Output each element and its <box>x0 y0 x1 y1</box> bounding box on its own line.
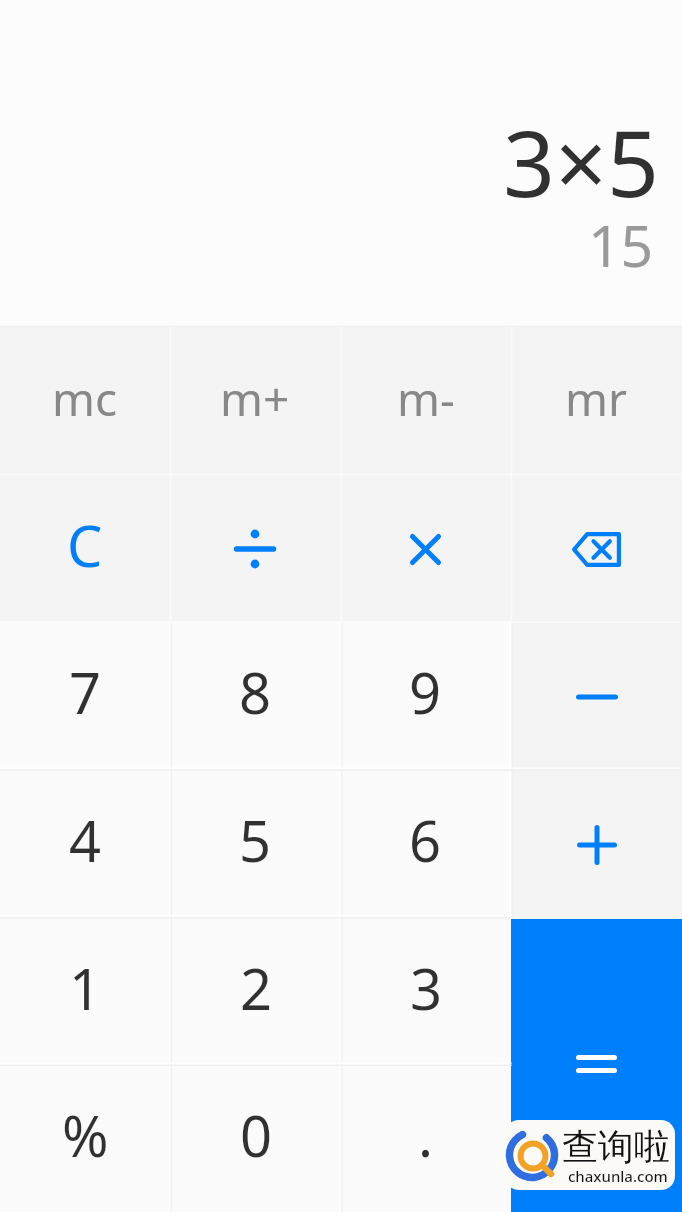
button[interactable]: 6 <box>340 771 511 919</box>
button[interactable]: C <box>0 475 170 623</box>
button[interactable]: 7 <box>0 623 170 771</box>
button[interactable]: 9 <box>340 623 511 771</box>
staticText: 0 <box>240 1097 273 1173</box>
staticText: m+ <box>220 367 290 430</box>
button[interactable]: Equals <box>511 919 682 1212</box>
button[interactable]: 2 <box>171 919 341 1067</box>
staticText: 7 <box>69 654 102 730</box>
button[interactable]: Plus <box>511 771 682 919</box>
button[interactable]: % <box>0 1067 171 1212</box>
button[interactable]: 5 <box>170 771 340 919</box>
staticText: 6 <box>409 802 442 878</box>
button[interactable]: mr <box>511 327 682 475</box>
staticText: 8 <box>239 654 272 730</box>
button[interactable]: mc <box>0 327 170 475</box>
button[interactable]: 4 <box>0 771 170 919</box>
staticText: 2 <box>240 950 273 1026</box>
button[interactable]: Divide <box>170 475 340 623</box>
button[interactable]: 1 <box>0 919 171 1067</box>
button[interactable]: 8 <box>170 623 340 771</box>
staticText: 3×5 <box>503 100 660 224</box>
staticText: 9 <box>409 654 442 730</box>
staticText: m- <box>397 367 455 430</box>
button[interactable]: 3 <box>341 919 511 1067</box>
staticText: % <box>62 1097 109 1173</box>
button[interactable]: m- <box>340 327 511 475</box>
staticText: 5 <box>239 802 272 878</box>
staticText: 3 <box>410 950 443 1026</box>
button[interactable]: Minus <box>511 623 682 771</box>
staticText: C <box>67 507 103 583</box>
button[interactable]: Multiply <box>340 475 511 623</box>
staticText: 4 <box>69 802 102 878</box>
staticText: chaxunla.com <box>568 1166 668 1186</box>
staticText: 1 <box>69 950 102 1026</box>
button[interactable]: . <box>341 1067 511 1212</box>
button[interactable]: Backspace <box>511 475 682 623</box>
button[interactable]: 0 <box>171 1067 341 1212</box>
staticText: . <box>418 1097 434 1173</box>
staticText: mc <box>52 367 118 430</box>
button[interactable]: m+ <box>170 327 340 475</box>
staticText: 查询啦 <box>562 1124 670 1169</box>
staticText: mr <box>565 367 628 430</box>
staticText: 15 <box>588 206 654 284</box>
